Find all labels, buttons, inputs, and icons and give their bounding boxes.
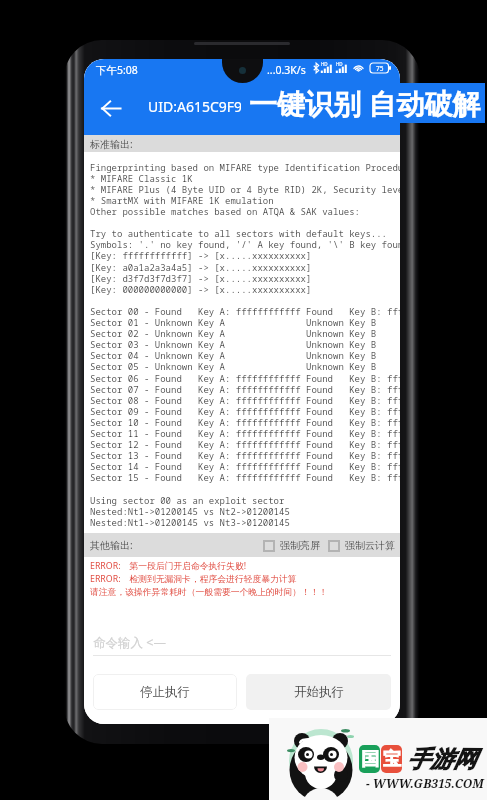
staticText: * MIFARE Plus (4 Byte UID or 4 Byte RID)…: [90, 183, 400, 195]
staticText: * SmartMX with MIFARE 1K emulation: [90, 194, 274, 206]
staticText: [Key: 000000000000] -> [x.....xxxxxxxxxx…: [90, 283, 312, 295]
staticText: 其他输出:: [90, 538, 133, 552]
staticText: Sector 08 - Found Key A: ffffffffffff Fo…: [90, 394, 400, 406]
staticText: [Key: a0a1a2a3a4a5] -> [x.....xxxxxxxxxx…: [90, 261, 312, 273]
staticText: Sector 07 - Found Key A: ffffffffffff Fo…: [90, 383, 400, 395]
button[interactable]: 停止执行: [93, 674, 237, 710]
staticText: Sector 10 - Found Key A: ffffffffffff Fo…: [90, 416, 400, 428]
staticText: Sector 00 - Found Key A: ffffffffffff Fo…: [90, 305, 400, 317]
staticText: 手游网: [407, 745, 476, 774]
staticText: Using sector 00 as an exploit sector: [90, 494, 285, 506]
staticText: 宝: [383, 748, 401, 771]
staticText: Sector 06 - Found Key A: ffffffffffff Fo…: [90, 372, 400, 384]
button[interactable]: 强制亮屏: [263, 539, 320, 552]
button[interactable]: Back: [93, 90, 129, 126]
staticText: 下午5:08: [96, 63, 138, 77]
staticText: Fingerprinting based on MIFARE type Iden…: [90, 161, 400, 173]
staticText: 开始执行: [294, 684, 344, 700]
staticText: Sector 12 - Found Key A: ffffffffffff Fo…: [90, 438, 400, 450]
staticText: [Key: d3f7d3f7d3f7] -> [x.....xxxxxxxxxx…: [90, 272, 312, 284]
staticText: Sector 13 - Found Key A: ffffffffffff Fo…: [90, 449, 400, 461]
staticText: Try to authenticate to all sectors with …: [90, 227, 388, 239]
staticText: Sector 14 - Found Key A: ffffffffffff Fo…: [90, 460, 400, 472]
staticText: 国: [361, 748, 379, 771]
staticText: - WWW.GB315.COM -: [366, 775, 487, 791]
staticText: Sector 04 - Unknown Key A Unknown Key B: [90, 349, 377, 361]
staticText: ERROR: 检测到无漏洞卡，程序会进行轻度暴力计算: [90, 573, 297, 585]
staticText: [Key: ffffffffffff] -> [x.....xxxxxxxxxx…: [90, 249, 312, 261]
staticText: Nested:Nt1->01200145 vs Nt3->01200145: [90, 516, 290, 528]
staticText: 强制云计算: [345, 539, 395, 552]
staticText: Sector 01 - Unknown Key A Unknown Key B: [90, 316, 377, 328]
staticText: HD: [321, 61, 328, 67]
staticText: UID:A615C9F9: [148, 97, 243, 116]
staticText: 命令输入 <—: [93, 634, 166, 651]
staticText: 75: [376, 64, 384, 73]
staticText: HD: [336, 61, 343, 67]
staticText: 强制亮屏: [280, 539, 320, 552]
staticText: Sector 05 - Unknown Key A Unknown Key B: [90, 360, 377, 372]
staticText: Symbols: '.' no key found, '/' A key fou…: [90, 238, 400, 250]
staticText: Sector 03 - Unknown Key A Unknown Key B: [90, 338, 377, 350]
staticText: Sector 11 - Found Key A: ffffffffffff Fo…: [90, 427, 400, 439]
staticText: Sector 15 - Found Key A: ffffffffffff Fo…: [90, 471, 400, 483]
staticText: * MIFARE Classic 1K: [90, 172, 193, 184]
staticText: 一键识别 自动破解: [249, 84, 481, 122]
staticText: Sector 02 - Unknown Key A Unknown Key B: [90, 327, 377, 339]
staticText: 停止执行: [140, 684, 190, 700]
staticText: Nested:Nt1->01200145 vs Nt2->01200145: [90, 505, 290, 517]
staticText: Other possible matches based on ATQA & S…: [90, 205, 361, 217]
staticText: ...0.3K/s: [267, 63, 306, 77]
staticText: ERROR: 第一段后门开启命令执行失败!: [90, 560, 247, 572]
button[interactable]: 开始执行: [246, 674, 391, 710]
staticText: 请注意，该操作异常耗时（一般需要一个晚上的时间）！！！: [90, 587, 328, 598]
button[interactable]: 强制云计算: [328, 539, 395, 552]
staticText: 标准输出:: [90, 137, 133, 151]
staticText: Sector 09 - Found Key A: ffffffffffff Fo…: [90, 405, 400, 417]
